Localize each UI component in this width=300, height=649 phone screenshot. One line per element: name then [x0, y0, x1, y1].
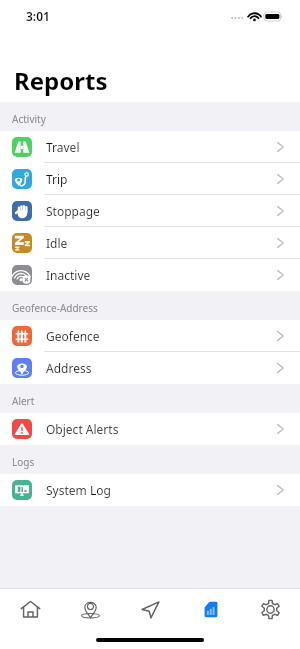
- staticText: 3:01: [26, 8, 50, 24]
- staticText: Stoppage: [46, 203, 100, 219]
- staticText: Address: [46, 360, 92, 376]
- button[interactable]: Navigate: [120, 589, 180, 629]
- button[interactable]: Settings: [240, 589, 300, 629]
- staticText: Logs: [12, 455, 35, 469]
- staticText: Trip: [46, 171, 68, 187]
- staticText: Inactive: [46, 267, 91, 283]
- staticText: Travel: [46, 139, 80, 155]
- staticText: Alert: [12, 394, 35, 408]
- button[interactable]: Object Alerts: [0, 413, 300, 445]
- staticText: Reports: [14, 64, 108, 97]
- staticText: Geofence: [46, 328, 100, 344]
- staticText: Idle: [46, 235, 68, 251]
- button[interactable]: Stoppage: [0, 195, 300, 227]
- staticText: Activity: [12, 112, 46, 126]
- staticText: Geofence-Address: [12, 301, 98, 315]
- button[interactable]: Travel: [0, 131, 300, 163]
- staticText: System Log: [46, 482, 111, 498]
- button[interactable]: Places: [60, 589, 120, 629]
- button[interactable]: Address: [0, 352, 300, 384]
- staticText: Object Alerts: [46, 421, 119, 437]
- button[interactable]: Geofence: [0, 320, 300, 352]
- button[interactable]: Idle: [0, 227, 300, 259]
- button[interactable]: Reports: [180, 589, 240, 629]
- button[interactable]: System Log: [0, 474, 300, 506]
- button[interactable]: Home: [0, 589, 60, 629]
- button[interactable]: Inactive: [0, 259, 300, 291]
- button[interactable]: Trip: [0, 163, 300, 195]
